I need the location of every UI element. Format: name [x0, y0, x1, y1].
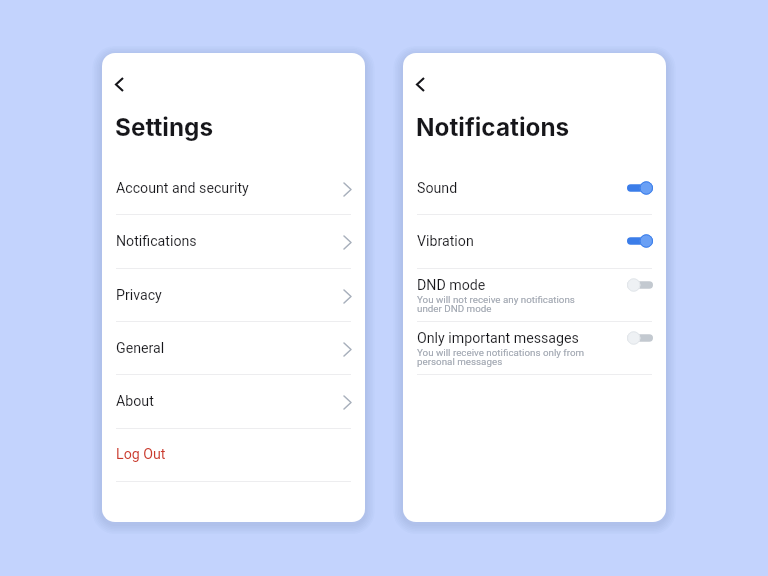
staticText: Log Out [116, 446, 166, 463]
button[interactable]: General [116, 322, 351, 375]
button[interactable]: About [116, 375, 351, 428]
button[interactable]: DND mode [417, 267, 652, 320]
staticText: General [116, 340, 342, 357]
button[interactable]: Only important messages [417, 320, 652, 373]
staticText: Notifications [416, 112, 570, 141]
button[interactable]: Sound on [627, 180, 653, 196]
staticText: You will not receive any notifications u… [417, 294, 575, 315]
staticText: You will receive notifications only from… [417, 347, 585, 368]
staticText: Sound [417, 180, 626, 197]
staticText: About [116, 393, 342, 410]
button[interactable]: Back [103, 68, 135, 100]
staticText: Vibration [417, 233, 626, 250]
button[interactable]: Back [404, 68, 436, 100]
staticText: DND mode [417, 277, 486, 294]
button[interactable]: Log Out [116, 428, 351, 481]
button[interactable]: Sound [417, 162, 652, 215]
button[interactable]: Account and security [116, 162, 351, 215]
staticText: Account and security [116, 180, 342, 197]
staticText: Notifications [116, 233, 342, 250]
button[interactable]: Notifications [116, 215, 351, 268]
staticText: Only important messages [417, 330, 579, 347]
button[interactable]: Only important messages off [627, 330, 653, 346]
button[interactable]: Vibration on [627, 233, 653, 249]
button[interactable]: Vibration [417, 215, 652, 268]
staticText: Settings [115, 112, 213, 141]
staticText: Privacy [116, 287, 342, 304]
button[interactable]: Privacy [116, 269, 351, 322]
button[interactable]: DND mode off [627, 277, 653, 293]
